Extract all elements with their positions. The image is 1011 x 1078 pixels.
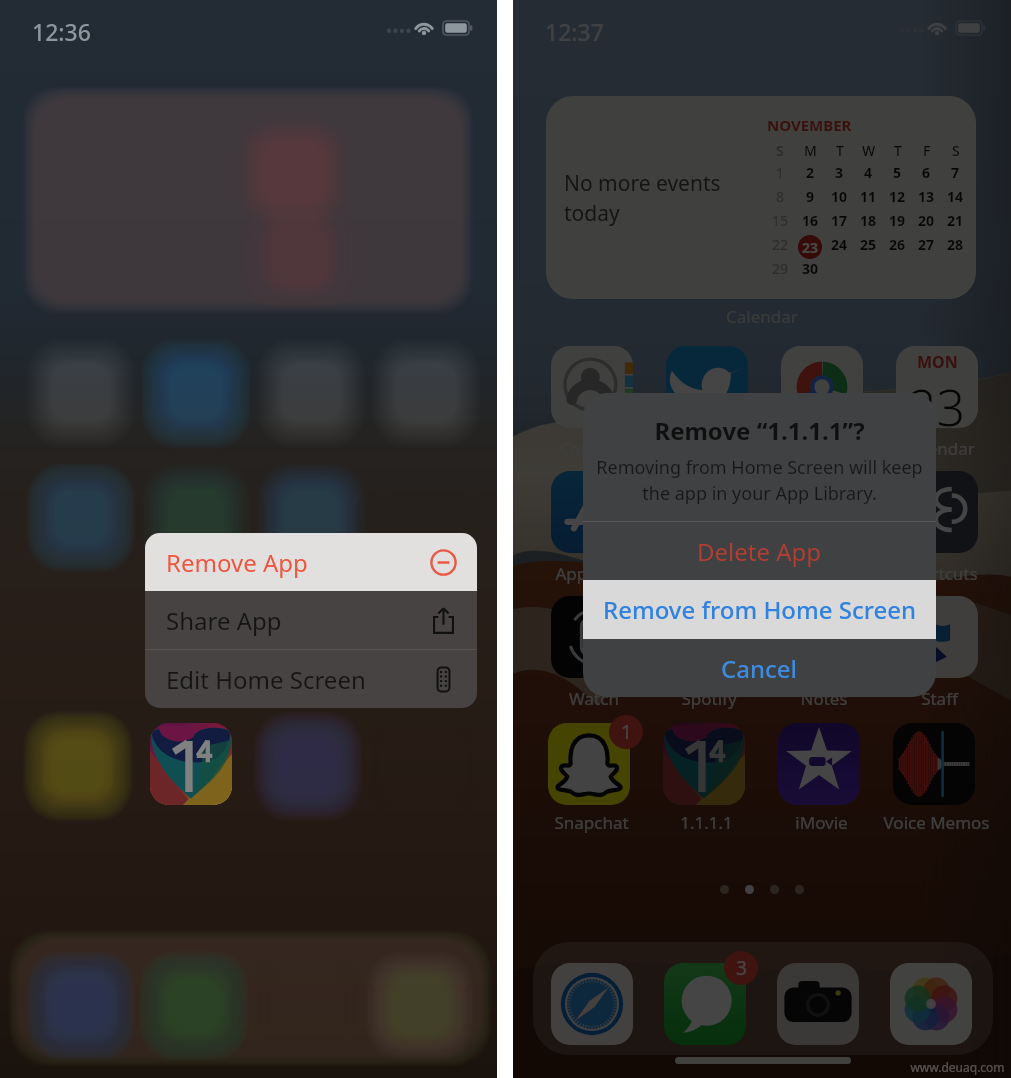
- staticText: 23: [908, 373, 966, 428]
- staticText: Notes: [800, 687, 848, 710]
- staticText: NOVEMBER: [767, 115, 852, 135]
- button[interactable]: Staff: [896, 596, 978, 678]
- staticText: Remove from Home Screen: [603, 593, 917, 626]
- staticText: 3: [835, 163, 844, 182]
- staticText: Snapchat: [554, 811, 629, 834]
- staticText: Photos: [796, 437, 852, 460]
- staticText: Delete App: [697, 535, 822, 568]
- staticText: 22: [772, 235, 789, 254]
- button[interactable]: Share App: [145, 591, 477, 649]
- staticText: Calendar: [903, 437, 975, 460]
- button[interactable]: Contacts: [551, 346, 633, 428]
- button[interactable]: iMovie: [778, 723, 860, 805]
- staticText: S: [952, 141, 960, 160]
- staticText: 11: [860, 187, 877, 206]
- staticText: Calendar: [726, 305, 798, 328]
- staticText: F: [923, 141, 931, 160]
- staticText: Cancel: [721, 652, 798, 685]
- staticText: 2: [806, 163, 815, 182]
- staticText: 23: [802, 238, 819, 257]
- staticText: 10: [831, 187, 848, 206]
- staticText: 19: [889, 211, 906, 230]
- staticText: S: [776, 141, 784, 160]
- button[interactable]: Cancel: [583, 639, 936, 697]
- button[interactable]: 1.1.1.1: [663, 723, 745, 805]
- staticText: 26: [889, 235, 906, 254]
- staticText: Remove App: [166, 546, 308, 579]
- staticText: 28: [947, 235, 964, 254]
- staticText: 20: [918, 211, 935, 230]
- staticText: Staff: [921, 687, 958, 710]
- staticText: Spotify: [681, 687, 737, 710]
- staticText: 24: [831, 235, 848, 254]
- staticText: 4: [864, 163, 873, 182]
- staticText: 8: [776, 187, 785, 206]
- staticText: T: [894, 141, 902, 160]
- staticText: 25: [860, 235, 877, 254]
- staticText: MON: [917, 351, 958, 373]
- staticText: Removing from Home Screen will keep the …: [596, 455, 923, 505]
- staticText: Twitter: [681, 437, 737, 460]
- button[interactable]: App Store: [551, 471, 633, 553]
- staticText: www.deuaq.com: [910, 1059, 1005, 1075]
- button[interactable]: Calendar: [896, 346, 978, 428]
- staticText: 15: [772, 211, 789, 230]
- button[interactable]: Twitter: [666, 346, 748, 428]
- staticText: 1: [621, 719, 632, 745]
- staticText: Watch: [569, 687, 619, 710]
- staticText: 27: [918, 235, 935, 254]
- staticText: 30: [802, 259, 819, 278]
- button[interactable]: Chrome: [781, 346, 863, 428]
- staticText: Shortcuts: [901, 562, 978, 585]
- button[interactable]: Remove from Home Screen: [583, 580, 936, 639]
- button[interactable]: Photos: [890, 963, 972, 1045]
- staticText: W: [862, 141, 876, 160]
- staticText: 21: [947, 211, 964, 230]
- staticText: 6: [922, 163, 931, 182]
- staticText: 12: [889, 187, 906, 206]
- staticText: M: [804, 141, 817, 160]
- staticText: 17: [831, 211, 848, 230]
- staticText: Voice Memos: [883, 811, 990, 834]
- staticText: 12:37: [545, 16, 604, 47]
- button[interactable]: Delete App: [583, 522, 936, 580]
- button[interactable]: Messages: [664, 963, 746, 1045]
- staticText: Remove “1.1.1.1”?: [654, 414, 865, 447]
- staticText: Edit Home Screen: [166, 663, 366, 696]
- staticText: 18: [860, 211, 877, 230]
- button[interactable]: Snapchat: [548, 723, 630, 805]
- staticText: 3: [736, 955, 747, 981]
- staticText: Contacts: [559, 437, 629, 460]
- staticText: App Store: [555, 562, 634, 585]
- staticText: 1.1.1.1: [680, 811, 733, 834]
- button[interactable]: Camera: [777, 963, 859, 1045]
- staticText: No more events today: [564, 169, 721, 227]
- button[interactable]: No more events today: [546, 96, 976, 299]
- staticText: 16: [802, 211, 819, 230]
- staticText: Share App: [166, 604, 282, 637]
- button[interactable]: Watch: [551, 596, 633, 678]
- staticText: 7: [951, 163, 960, 182]
- button[interactable]: Edit Home Screen: [145, 650, 477, 708]
- staticText: 1: [776, 163, 785, 182]
- button[interactable]: Voice Memos: [893, 723, 975, 805]
- staticText: 9: [806, 187, 815, 206]
- button[interactable]: Shortcuts: [896, 471, 978, 553]
- staticText: 29: [772, 259, 789, 278]
- staticText: T: [836, 141, 844, 160]
- staticText: iMovie: [795, 811, 848, 834]
- staticText: 14: [947, 187, 964, 206]
- staticText: 5: [893, 163, 902, 182]
- button[interactable]: Remove App: [145, 533, 477, 591]
- button[interactable]: Safari: [551, 963, 633, 1045]
- button[interactable]: 1.1.1.1 app icon: [150, 723, 232, 805]
- staticText: 12:36: [32, 16, 91, 47]
- staticText: 13: [918, 187, 935, 206]
